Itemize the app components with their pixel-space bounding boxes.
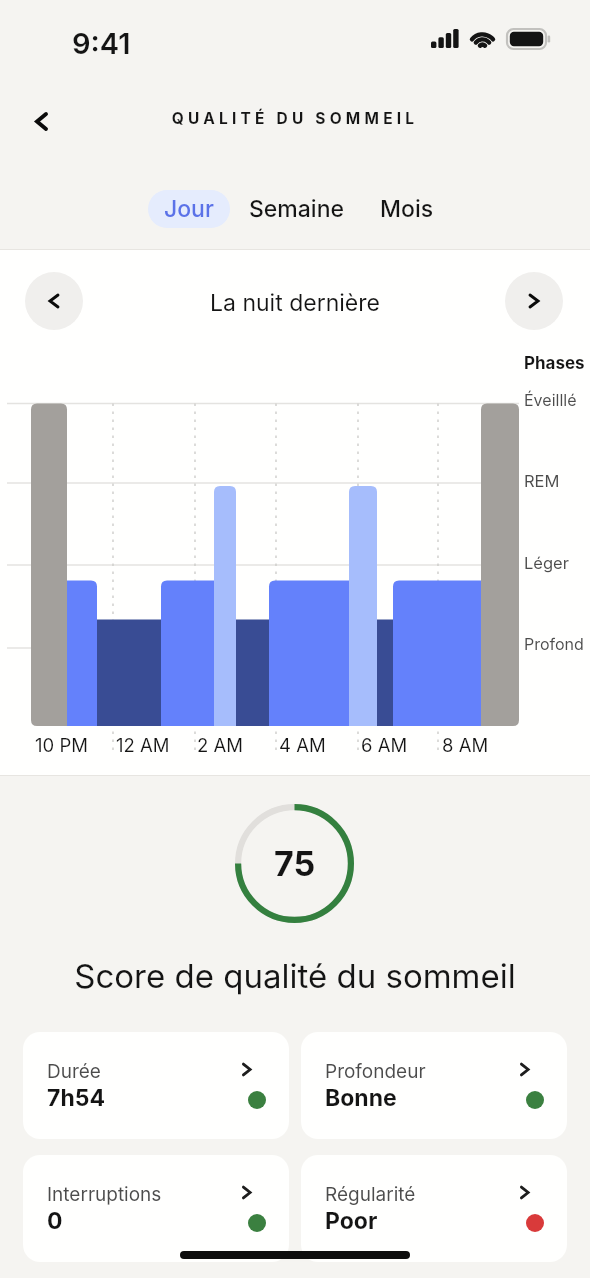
button[interactable]: Profondeur — [301, 1032, 567, 1139]
staticText: Durée — [47, 1060, 101, 1083]
staticText: Profondeur — [325, 1060, 426, 1083]
staticText: 2 AM — [197, 734, 243, 756]
staticText: REM — [524, 471, 560, 491]
button[interactable]: Mois — [368, 189, 446, 228]
staticText: Jour — [164, 195, 214, 223]
staticText: Poor — [325, 1207, 378, 1235]
button[interactable]: Régularité — [301, 1155, 567, 1262]
staticText: Score de qualité du sommeil — [0, 956, 590, 996]
staticText: Profond — [524, 634, 584, 653]
button[interactable]: Previous night — [25, 272, 83, 330]
button[interactable]: Jour — [148, 190, 230, 228]
staticText: 4 AM — [279, 734, 326, 756]
staticText: Bonne — [325, 1084, 397, 1112]
staticText: 10 PM — [35, 734, 88, 756]
staticText: Léger — [524, 553, 569, 573]
button[interactable]: Next night — [505, 272, 563, 330]
staticText: 12 AM — [116, 734, 170, 756]
staticText: Mois — [380, 195, 434, 223]
staticText: 0 — [47, 1207, 63, 1235]
staticText: Éveilllé — [524, 390, 577, 409]
staticText: Interruptions — [47, 1183, 162, 1206]
staticText: 9:41 — [72, 26, 131, 61]
staticText: Phases — [524, 353, 585, 374]
button[interactable]: Durée — [23, 1032, 289, 1139]
button[interactable]: Semaine — [235, 189, 358, 228]
staticText: 8 AM — [442, 734, 489, 756]
staticText: 75 — [274, 843, 316, 884]
button[interactable]: Back — [18, 98, 65, 145]
staticText: Régularité — [325, 1183, 416, 1206]
staticText: La nuit dernière — [0, 289, 590, 317]
button[interactable]: Interruptions — [23, 1155, 289, 1262]
staticText: 7h54 — [47, 1084, 105, 1112]
staticText: 6 AM — [361, 734, 408, 756]
staticText: Semaine — [249, 195, 344, 223]
staticText: QUALITÉ DU SOMMEIL — [0, 109, 590, 128]
